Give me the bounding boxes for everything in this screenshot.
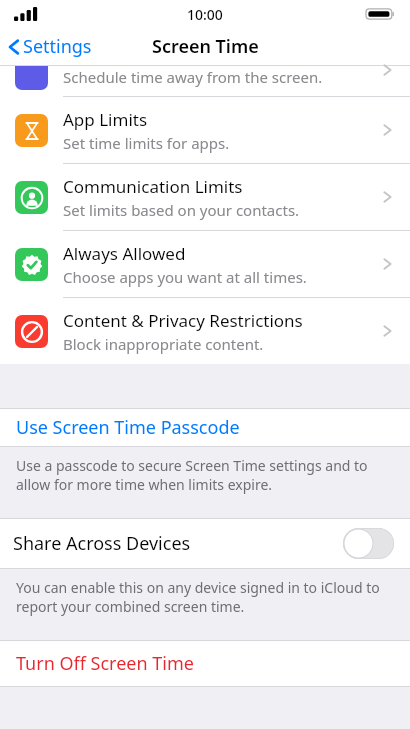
button[interactable]: Share Across Devices	[0, 519, 410, 568]
button[interactable]: Always Allowed	[0, 231, 410, 297]
staticText: Screen Time	[152, 34, 259, 59]
staticText: You can enable this on any device signed…	[16, 578, 390, 616]
button[interactable]: Settings	[0, 30, 100, 63]
button[interactable]: Content & Privacy Restrictions	[0, 298, 410, 364]
staticText: Content & Privacy Restrictions	[63, 309, 303, 332]
button[interactable]: Turn Off Screen Time	[0, 641, 410, 686]
staticText: Turn Off Screen Time	[16, 651, 194, 676]
staticText: App Limits	[63, 108, 148, 131]
staticText: Use a passcode to secure Screen Time set…	[16, 456, 388, 494]
staticText: Communication Limits	[63, 175, 243, 198]
button[interactable]: App Limits	[0, 97, 410, 163]
staticText: Settings	[23, 34, 92, 59]
button[interactable]: Schedule time away from the screen.	[0, 66, 410, 96]
staticText: Set time limits for apps.	[63, 133, 230, 153]
button[interactable]: Use Screen Time Passcode	[0, 409, 410, 446]
staticText: Always Allowed	[63, 242, 186, 265]
staticText: Share Across Devices	[13, 531, 191, 556]
staticText: Set limits based on your contacts.	[63, 200, 300, 220]
staticText: Choose apps you want at all times.	[63, 267, 307, 287]
staticText: Schedule time away from the screen.	[63, 67, 323, 87]
button[interactable]: Share Across Devices toggle	[343, 528, 394, 559]
staticText: 10:00	[187, 5, 223, 24]
staticText: Use Screen Time Passcode	[16, 415, 240, 440]
button[interactable]: Communication Limits	[0, 164, 410, 230]
staticText: Block inappropriate content.	[63, 334, 264, 354]
